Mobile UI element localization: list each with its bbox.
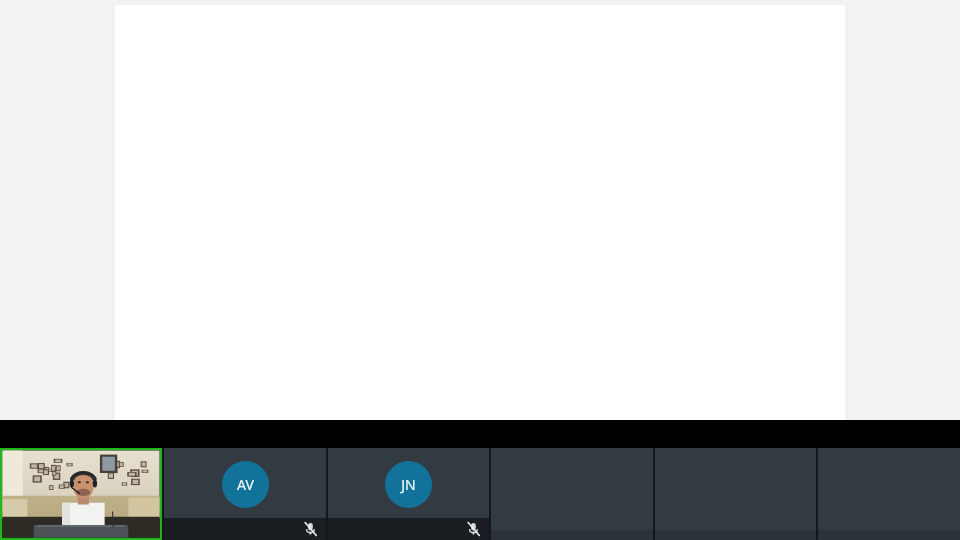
- staticText: JN: [401, 475, 416, 494]
- button[interactable]: [818, 448, 960, 540]
- button[interactable]: JN: [328, 448, 489, 540]
- button[interactable]: [491, 448, 653, 540]
- staticText: AV: [237, 475, 254, 494]
- button[interactable]: AV: [164, 448, 326, 540]
- other: Microphone muted: [304, 522, 318, 536]
- button[interactable]: [655, 448, 816, 540]
- other: Microphone muted: [467, 522, 481, 536]
- button[interactable]: Active speaker video: [0, 448, 162, 540]
